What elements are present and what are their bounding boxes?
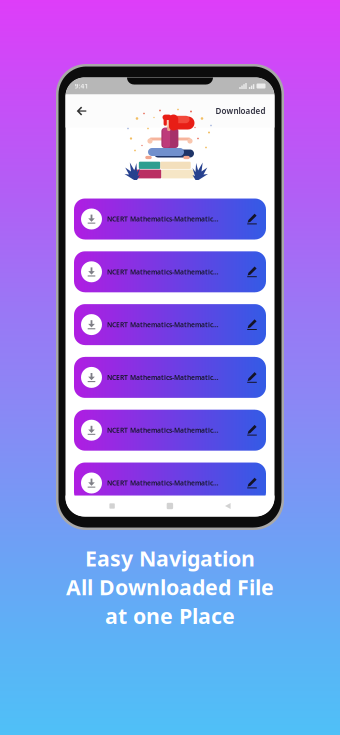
button[interactable]: Back <box>217 495 239 517</box>
staticText: All Downloaded File <box>66 573 274 601</box>
staticText: Downloaded <box>215 106 265 116</box>
staticText: Easy Navigation <box>85 544 255 572</box>
button[interactable]: NCERT Mathematics-Mathematic… <box>74 304 266 345</box>
button[interactable]: Recent apps <box>101 495 123 517</box>
button[interactable]: Back <box>65 98 97 124</box>
staticText: NCERT Mathematics-Mathematic… <box>107 426 219 435</box>
staticText: 9:41 <box>74 82 88 90</box>
staticText: NCERT Mathematics-Mathematic… <box>107 373 219 382</box>
staticText: NCERT Mathematics-Mathematic… <box>107 479 219 487</box>
button[interactable]: NCERT Mathematics-Mathematic… <box>74 410 266 451</box>
button[interactable]: NCERT Mathematics-Mathematic… <box>74 357 266 398</box>
staticText: NCERT Mathematics-Mathematic… <box>107 215 219 223</box>
staticText: at one Place <box>105 602 235 630</box>
button[interactable]: NCERT Mathematics-Mathematic… <box>74 198 266 239</box>
staticText: NCERT Mathematics-Mathematic… <box>107 320 219 329</box>
staticText: NCERT Mathematics-Mathematic… <box>107 267 219 276</box>
button[interactable]: NCERT Mathematics-Mathematic… <box>74 462 266 503</box>
button[interactable]: NCERT Mathematics-Mathematic… <box>74 251 266 292</box>
button[interactable]: Home <box>159 495 181 517</box>
